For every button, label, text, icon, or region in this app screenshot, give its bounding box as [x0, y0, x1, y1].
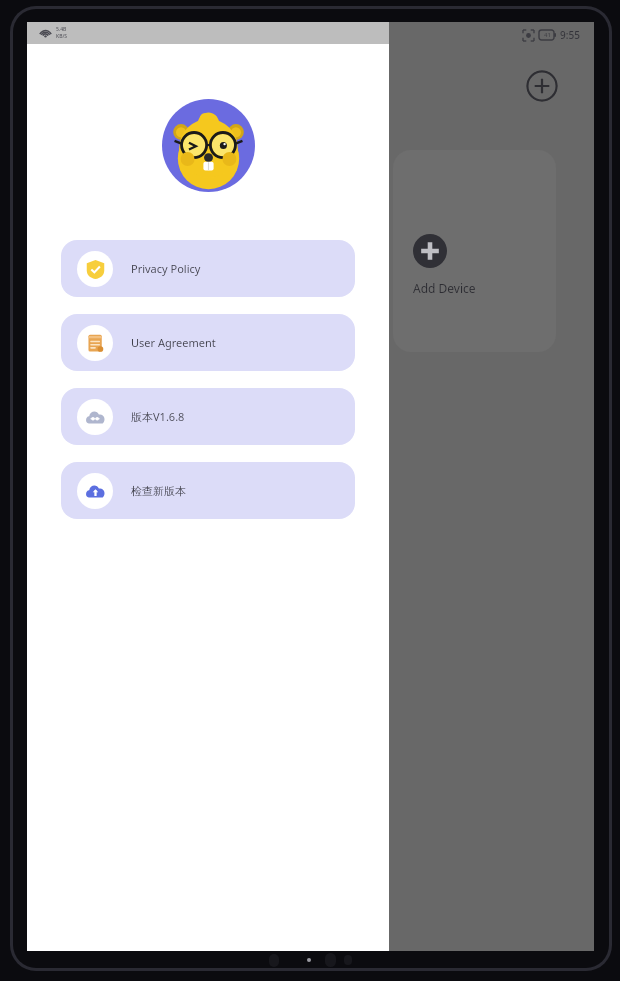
- button[interactable]: Add: [526, 70, 558, 102]
- button[interactable]: Privacy Policy: [61, 240, 355, 297]
- staticText: Add Device: [413, 280, 476, 296]
- staticText: 5.4B: [56, 26, 67, 33]
- staticText: Privacy Policy: [131, 261, 201, 276]
- button[interactable]: 版本V1.6.8: [61, 388, 355, 445]
- staticText: KB/S: [56, 33, 68, 40]
- staticText: User Agreement: [131, 335, 216, 350]
- staticText: 版本V1.6.8: [131, 409, 185, 424]
- staticText: 检查新版本: [131, 484, 186, 498]
- button[interactable]: Add Device: [393, 150, 556, 352]
- button[interactable]: User Agreement: [61, 314, 355, 371]
- staticText: 41: [544, 31, 551, 39]
- button[interactable]: 检查新版本: [61, 462, 355, 519]
- staticText: 9:55: [560, 28, 580, 42]
